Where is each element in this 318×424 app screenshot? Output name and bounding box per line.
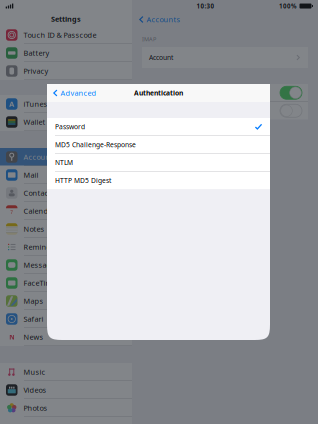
staticText: Photos [23, 403, 47, 413]
staticText: Touch ID & Passcode [23, 30, 96, 40]
button[interactable]: Wallet & Apple Pay [0, 113, 132, 131]
staticText: NTLM [55, 158, 73, 167]
staticText: MD5 Challenge-Response [55, 140, 136, 149]
button[interactable]: Turn off [280, 86, 302, 99]
button[interactable]: Accounts [0, 148, 132, 166]
staticText: Videos [23, 385, 46, 395]
button[interactable]: 7 [0, 202, 132, 220]
button[interactable]: A [0, 95, 132, 113]
staticText: Reminders [23, 242, 62, 252]
button[interactable]: Contacts [0, 184, 132, 202]
button[interactable]: Battery [0, 44, 132, 62]
staticText: A [9, 99, 14, 109]
staticText: Authentication [134, 88, 183, 98]
button[interactable]: Maps [0, 292, 132, 310]
staticText: iTunes [23, 99, 47, 109]
button[interactable]: Messages [0, 256, 132, 274]
staticText: Mail [23, 170, 38, 180]
staticText: HTTP MD5 Digest [55, 176, 111, 185]
button[interactable]: Music [0, 363, 132, 381]
staticText: 7 [10, 209, 13, 216]
staticText: Accounts [23, 152, 57, 162]
staticText: Contacts [23, 188, 55, 198]
staticText: Accounts [146, 14, 180, 24]
staticText: Settings [51, 14, 81, 24]
button[interactable]: Videos [0, 381, 132, 399]
staticText: Notes [23, 224, 44, 234]
button[interactable]: HTTP MD5 Digest [47, 172, 270, 189]
staticText: Music [23, 367, 45, 377]
button[interactable]: N [0, 328, 132, 346]
button[interactable]: Photos [0, 399, 132, 417]
staticText: Battery [23, 48, 49, 58]
staticText: Safari [23, 314, 43, 324]
button[interactable]: FaceTime [0, 274, 132, 292]
button[interactable]: Privacy [0, 62, 132, 80]
button[interactable]: Advanced [47, 85, 96, 101]
staticText: N [9, 332, 14, 342]
button[interactable]: Reminders [0, 238, 132, 256]
staticText: Wallet & Apple Pay [23, 117, 89, 127]
button[interactable]: MD5 Challenge-Response [47, 136, 270, 153]
staticText: Advanced [60, 88, 96, 98]
staticText: Messages [23, 260, 59, 270]
button[interactable]: Touch ID & Passcode [0, 26, 132, 44]
staticText: Password [55, 122, 85, 131]
staticText: Account [149, 53, 173, 62]
staticText: FaceTime [23, 278, 56, 288]
button[interactable]: Notes [0, 220, 132, 238]
staticText: IMAP [142, 35, 156, 43]
staticText: Privacy [23, 66, 48, 76]
button[interactable]: NTLM [47, 154, 270, 171]
button[interactable]: Account [142, 47, 308, 68]
staticText: Calendar [23, 206, 55, 216]
staticText: News [23, 332, 43, 342]
button[interactable]: Accounts [132, 11, 180, 27]
button[interactable]: Safari [0, 310, 132, 328]
staticText: 100% [279, 2, 297, 10]
staticText: 10:30 [196, 2, 214, 10]
staticText: Maps [23, 296, 43, 306]
button[interactable]: Mail [0, 166, 132, 184]
button[interactable]: Password [47, 118, 270, 135]
button[interactable]: Turn on [280, 104, 302, 117]
